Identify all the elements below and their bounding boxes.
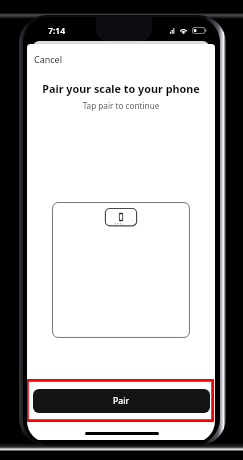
- staticText: Pair: [113, 395, 130, 407]
- staticText: 7:14: [48, 25, 66, 37]
- staticText: Tap pair to continue: [27, 100, 215, 111]
- staticText: Pair your scale to your phone: [27, 81, 215, 96]
- button[interactable]: Pair: [33, 389, 210, 413]
- staticText: Cancel: [34, 53, 63, 65]
- button[interactable]: Cancel: [29, 50, 68, 68]
